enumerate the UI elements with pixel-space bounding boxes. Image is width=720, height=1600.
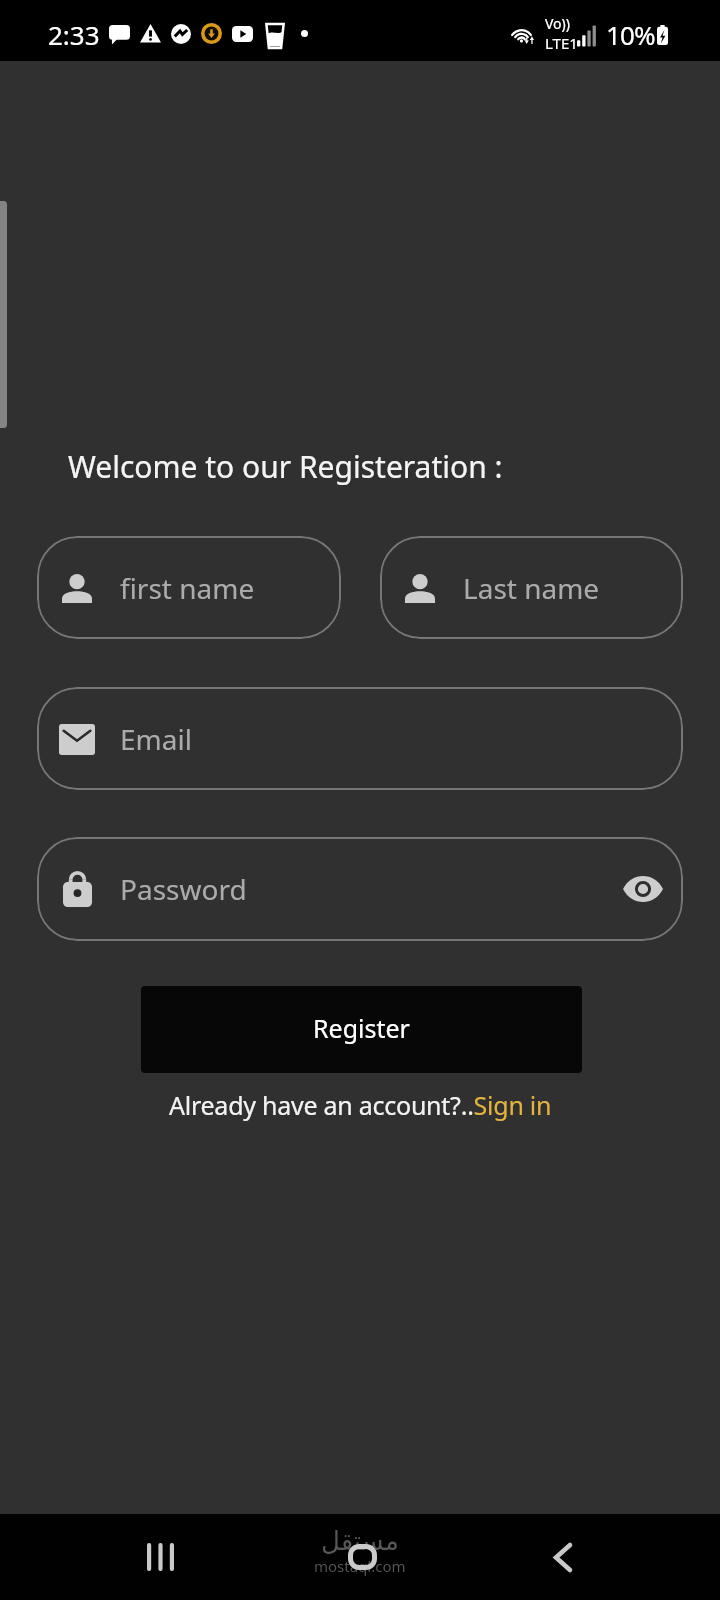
staticText: mostaql.com — [314, 1556, 406, 1576]
staticText: 10% — [606, 17, 655, 52]
button[interactable]: Recent apps — [120, 1517, 200, 1597]
staticText: first name — [120, 569, 255, 607]
staticText: 2:33 — [48, 17, 100, 52]
staticText: Email — [120, 720, 192, 758]
button[interactable]: Already have an account?..Sign in — [169, 1088, 552, 1122]
staticText: Welcome to our Registeration : — [68, 446, 503, 487]
staticText: Vo)) — [545, 14, 570, 33]
button[interactable]: Password — [37, 837, 683, 941]
staticText: LTE1 — [545, 33, 578, 53]
button[interactable]: Register — [141, 986, 582, 1073]
staticText: مستقل — [321, 1526, 399, 1556]
button[interactable]: Back — [523, 1517, 603, 1597]
button[interactable]: Show password — [619, 865, 667, 913]
staticText: Register — [313, 1011, 410, 1045]
button[interactable]: first name — [37, 536, 341, 639]
staticText: Last name — [463, 569, 600, 607]
button[interactable]: Email — [37, 687, 683, 790]
button[interactable]: Home — [322, 1517, 402, 1597]
button[interactable]: Last name — [380, 536, 683, 639]
staticText: Password — [120, 870, 247, 908]
